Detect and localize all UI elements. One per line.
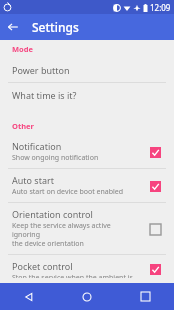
- staticText: Orientation control: [12, 208, 93, 220]
- staticText: Auto start: [12, 174, 54, 186]
- staticText: Keep the service always active ignoring: [12, 221, 140, 239]
- staticText: What time is it?: [12, 89, 77, 101]
- staticText: the device orientation: [12, 239, 84, 249]
- staticText: Settings: [32, 19, 79, 35]
- staticText: Pocket control: [12, 260, 73, 272]
- button[interactable]: Home: [58, 283, 116, 310]
- button[interactable]: Notification: [0, 135, 174, 168]
- button[interactable]: Power button: [0, 58, 174, 82]
- button[interactable]: Recent apps: [116, 283, 174, 310]
- staticText: Auto start on device boot enabled: [12, 187, 124, 197]
- staticText: Mode: [12, 44, 33, 54]
- button[interactable]: Pocket control: [0, 255, 174, 283]
- button[interactable]: Back: [0, 14, 26, 40]
- staticText: Notification: [12, 140, 62, 152]
- staticText: Other: [12, 121, 34, 131]
- staticText: Show ongoing notification: [12, 153, 99, 163]
- button[interactable]: Auto start: [0, 169, 174, 202]
- staticText: Power button: [12, 64, 70, 76]
- button[interactable]: Back: [0, 283, 58, 310]
- staticText: 12:09: [150, 2, 171, 13]
- staticText: Stop the service when the ambient is dar…: [12, 273, 140, 278]
- button[interactable]: Orientation control: [0, 203, 174, 254]
- button[interactable]: What time is it?: [0, 83, 174, 107]
